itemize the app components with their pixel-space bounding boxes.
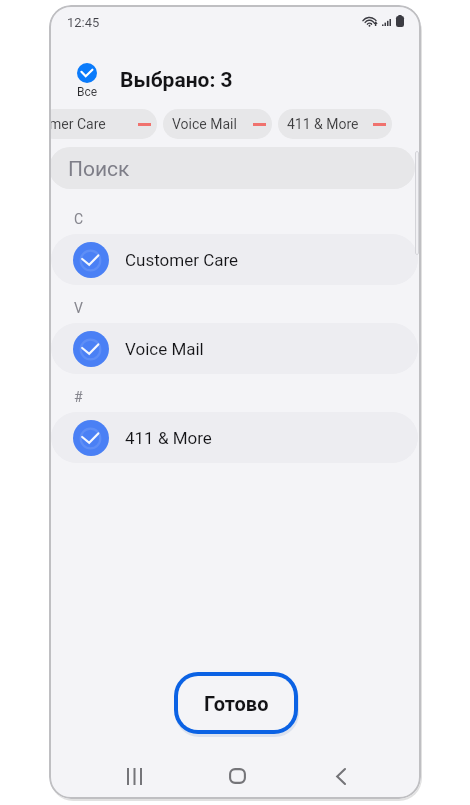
button[interactable]: mer Care <box>49 109 157 139</box>
button[interactable]: Recent apps <box>116 758 152 794</box>
staticText: Voice Mail <box>172 116 237 132</box>
staticText: Все <box>77 85 98 99</box>
button[interactable]: Home <box>219 758 255 794</box>
button[interactable]: Все <box>68 58 106 105</box>
button[interactable]: Поиск <box>49 147 415 189</box>
button[interactable]: Voice Mail <box>163 109 272 139</box>
staticText: V <box>74 300 83 316</box>
staticText: C <box>74 211 84 227</box>
button[interactable]: Back <box>323 758 359 794</box>
button[interactable]: Готово <box>174 672 298 734</box>
staticText: Готово <box>204 692 269 715</box>
button[interactable]: Customer Care <box>51 234 418 285</box>
staticText: Voice Mail <box>125 339 204 359</box>
staticText: # <box>74 389 83 405</box>
staticText: Поиск <box>68 157 130 182</box>
staticText: Выбрано: 3 <box>120 68 233 93</box>
button[interactable]: 411 & More <box>278 109 392 139</box>
staticText: 12:45 <box>67 15 100 30</box>
staticText: 411 & More <box>287 116 359 132</box>
button[interactable]: Voice Mail <box>51 323 418 374</box>
staticText: mer Care <box>49 116 106 132</box>
staticText: 411 & More <box>125 428 212 448</box>
staticText: Customer Care <box>125 250 239 270</box>
button[interactable]: 411 & More <box>51 412 418 463</box>
